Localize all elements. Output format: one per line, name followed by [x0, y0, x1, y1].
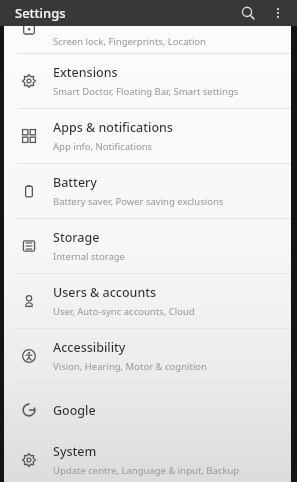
staticText: Storage	[53, 229, 100, 246]
button[interactable]: Storage	[4, 219, 291, 273]
staticText: Apps & notifications	[53, 119, 173, 136]
button[interactable]: Google	[4, 384, 291, 436]
staticText: Extensions	[53, 64, 118, 81]
staticText: Accessibility	[53, 339, 126, 356]
staticText: Update centre, Language & input, Backup	[53, 464, 240, 477]
button[interactable]: Search	[237, 2, 259, 24]
staticText: Settings	[15, 4, 66, 22]
staticText: Battery	[53, 174, 97, 191]
staticText: Screen lock, Fingerprints, Location	[53, 35, 206, 48]
button[interactable]: Users & accounts	[4, 274, 291, 328]
staticText: Users & accounts	[53, 284, 157, 301]
button[interactable]: Battery	[4, 164, 291, 218]
staticText: System	[53, 443, 97, 460]
staticText: Internal storage	[53, 250, 125, 263]
staticText: Battery saver, Power saving exclusions	[53, 195, 224, 208]
button[interactable]: Apps & notifications	[4, 109, 291, 163]
button[interactable]: System	[4, 437, 291, 482]
button[interactable]: Accessibility	[4, 329, 291, 383]
staticText: Google	[53, 402, 96, 419]
button[interactable]: Extensions	[4, 54, 291, 108]
staticText: Vision, Hearing, Motor & cognition	[53, 360, 207, 373]
staticText: App info, Notifications	[53, 140, 153, 153]
button[interactable]: Screen lock, Fingerprints, Location	[4, 26, 291, 53]
staticText: User, Auto-sync accounts, Cloud	[53, 305, 195, 318]
button[interactable]: More options	[267, 2, 289, 24]
staticText: Smart Doctor, Floating Bar, Smart settin…	[53, 85, 239, 98]
